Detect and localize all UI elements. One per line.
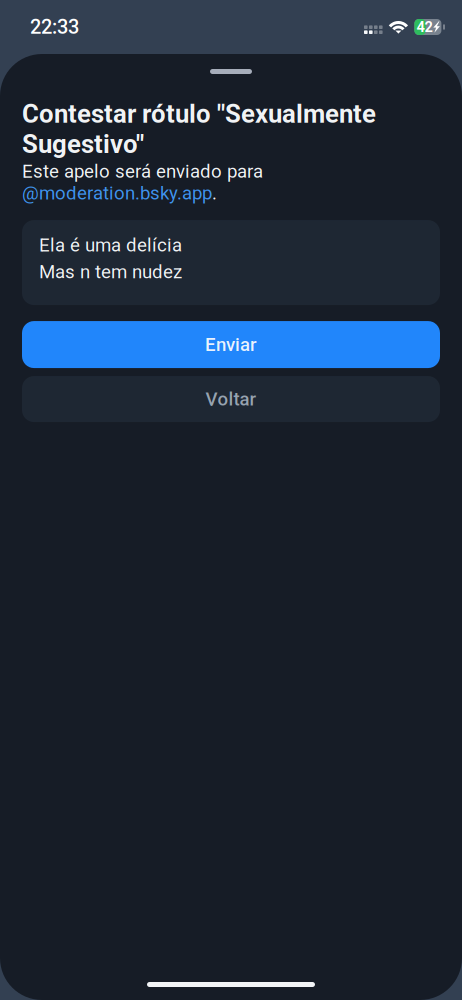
staticText: @moderation.bsky.app <box>22 182 212 204</box>
staticText: . <box>212 182 217 204</box>
staticText: Este apelo será enviado para <box>22 160 263 182</box>
staticText: Voltar <box>205 388 256 410</box>
staticText: 22:33 <box>30 15 79 39</box>
staticText: Ela é uma delícia <box>39 234 182 256</box>
button[interactable]: Voltar <box>22 376 440 422</box>
staticText: Contestar rótulo "Sexualmente Sugestivo" <box>22 99 376 159</box>
staticText: Enviar <box>205 334 257 355</box>
staticText: 42 <box>416 18 432 36</box>
staticText: Mas n tem nudez <box>39 261 182 283</box>
button[interactable]: Enviar <box>22 321 440 368</box>
